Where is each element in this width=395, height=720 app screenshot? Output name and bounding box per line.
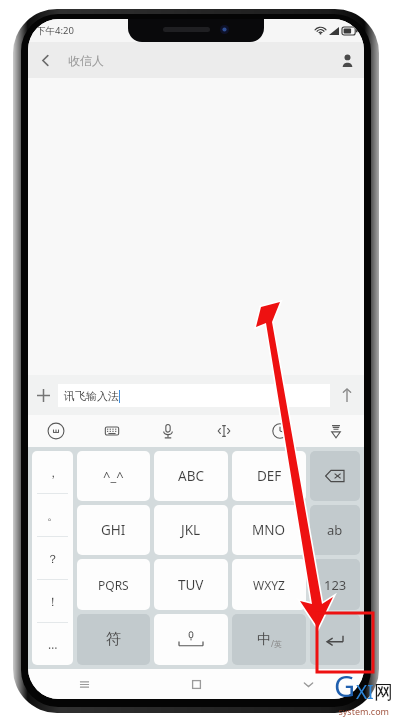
staticText: WXYZ — [253, 577, 285, 593]
button[interactable]: Enter — [310, 614, 360, 665]
staticText: XI — [356, 679, 374, 705]
button[interactable]: Keyboard — [84, 415, 140, 447]
button[interactable]: ab — [310, 505, 360, 555]
staticText: 123 — [324, 576, 347, 594]
button[interactable]: Hide keyboard — [308, 415, 364, 447]
button[interactable]: Contacts — [330, 43, 364, 77]
staticText: 符 — [106, 630, 121, 649]
staticText: 讯飞输入法 — [64, 389, 119, 403]
staticText: 下午4:20 — [36, 24, 74, 37]
staticText: 。 — [47, 508, 59, 523]
button[interactable]: Space — [154, 614, 228, 665]
staticText: G — [334, 666, 356, 705]
button[interactable]: Recent apps — [28, 669, 140, 699]
staticText: MNO — [252, 521, 286, 539]
staticText: GHI — [101, 521, 126, 539]
staticText: ^_^ — [103, 467, 124, 485]
button[interactable]: ABC — [154, 451, 228, 501]
button[interactable]: GHI — [77, 505, 150, 555]
staticText: PQRS — [98, 577, 129, 593]
button[interactable]: 符 — [77, 614, 150, 665]
button[interactable]: Send — [330, 375, 364, 415]
staticText: … — [48, 636, 58, 652]
staticText: system.com — [338, 705, 389, 717]
staticText: 网 — [374, 681, 393, 705]
staticText: ， — [47, 465, 59, 480]
button[interactable]: 中 — [232, 614, 306, 665]
button[interactable]: Home — [140, 669, 252, 699]
button[interactable]: Emoji — [252, 415, 308, 447]
button[interactable]: Move cursor — [196, 415, 252, 447]
button[interactable]: IME — [28, 415, 84, 447]
button[interactable]: 123 — [310, 559, 360, 610]
button[interactable]: ^_^ — [77, 451, 150, 501]
staticText: JKL — [181, 521, 201, 539]
button[interactable]: Add — [28, 375, 58, 415]
button[interactable]: Back — [252, 669, 364, 699]
staticText: 收信人 — [68, 53, 104, 68]
button[interactable]: ， — [32, 451, 73, 493]
button[interactable]: Back — [28, 43, 62, 77]
staticText: ！ — [47, 594, 59, 609]
button[interactable]: 。 — [32, 494, 73, 536]
button[interactable]: ！ — [32, 580, 73, 622]
button[interactable]: PQRS — [77, 559, 150, 610]
button[interactable]: 讯飞输入法 — [58, 384, 330, 407]
staticText: 中 — [257, 631, 271, 649]
button[interactable]: MNO — [232, 505, 306, 555]
button[interactable]: DEF — [232, 451, 306, 501]
staticText: ？ — [47, 551, 59, 566]
button[interactable]: WXYZ — [232, 559, 306, 610]
button[interactable]: Voice input — [140, 415, 196, 447]
button[interactable]: … — [32, 623, 73, 665]
staticText: /英 — [271, 638, 282, 649]
staticText: ab — [327, 521, 343, 539]
button[interactable]: ？ — [32, 537, 73, 579]
staticText: ABC — [178, 467, 204, 485]
button[interactable]: JKL — [154, 505, 228, 555]
staticText: DEF — [257, 467, 282, 485]
button[interactable]: TUV — [154, 559, 228, 610]
button[interactable]: Delete — [310, 451, 360, 501]
staticText: TUV — [178, 576, 204, 594]
